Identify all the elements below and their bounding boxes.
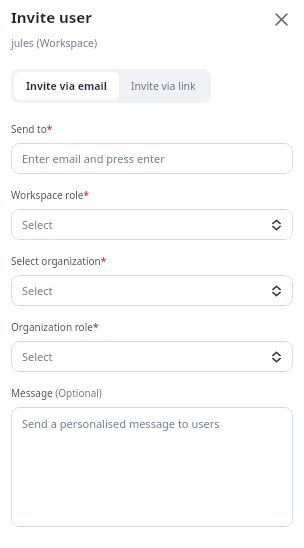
staticText: Send a personalised message to users xyxy=(22,416,220,431)
staticText: Invite via email xyxy=(26,79,107,93)
button[interactable]: Select xyxy=(11,275,293,306)
staticText: Select organization* xyxy=(11,254,107,268)
staticText: Select xyxy=(22,349,271,364)
button[interactable]: Enter email and press enter xyxy=(11,143,293,174)
button[interactable]: Select xyxy=(11,341,293,372)
staticText: Organization role* xyxy=(11,320,99,334)
staticText: Enter email and press enter xyxy=(22,151,165,166)
button[interactable]: Select xyxy=(11,209,293,240)
button[interactable]: Invite via email xyxy=(14,72,119,100)
staticText: Message (Optional) xyxy=(11,386,102,400)
staticText: Invite user xyxy=(11,7,92,27)
staticText: Select xyxy=(22,283,271,298)
staticText: Select xyxy=(22,217,271,232)
staticText: jules (Workspace) xyxy=(11,36,98,50)
staticText: Send to* xyxy=(11,122,53,136)
button[interactable]: Send a personalised message to users xyxy=(11,407,293,527)
staticText: Workspace role* xyxy=(11,188,89,202)
button[interactable]: Invite via link xyxy=(119,72,208,100)
staticText: Invite via link xyxy=(131,79,196,93)
button[interactable]: Close xyxy=(269,7,293,31)
